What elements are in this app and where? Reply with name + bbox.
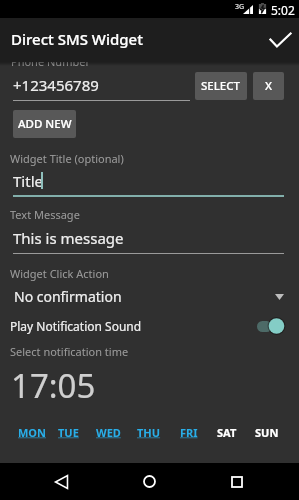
staticText: X	[265, 78, 273, 94]
staticText: Phone Number	[11, 54, 90, 69]
staticText: ADD NEW	[18, 116, 72, 132]
button[interactable]: No confirmation	[0, 286, 299, 310]
staticText: WED	[96, 425, 121, 440]
staticText: Direct SMS Widget	[11, 29, 143, 49]
staticText: Widget Click Action	[10, 266, 109, 281]
staticText: THU	[137, 425, 161, 440]
staticText: Play Notification Sound	[10, 318, 142, 334]
staticText: +123456789	[13, 75, 99, 95]
button[interactable]: X	[253, 72, 284, 100]
button[interactable]: FRI	[180, 422, 198, 442]
staticText: Title	[13, 171, 43, 191]
button[interactable]: SELECT	[195, 72, 247, 100]
button[interactable]: Save	[263, 25, 297, 55]
staticText: No confirmation	[14, 287, 122, 306]
staticText: This is message	[13, 228, 124, 248]
staticText: MON	[18, 425, 47, 440]
staticText: Select notification time	[10, 344, 129, 359]
staticText: 5:02	[271, 2, 295, 18]
button[interactable]: Back	[44, 465, 79, 498]
button[interactable]: Play Notification Sound	[0, 312, 299, 340]
staticText: SELECT	[201, 78, 241, 94]
button[interactable]: WED	[96, 422, 121, 442]
staticText: SUN	[255, 425, 279, 440]
staticText: 17:05	[11, 363, 96, 408]
button[interactable]: Recent apps	[219, 465, 254, 498]
staticText: SAT	[217, 425, 237, 440]
staticText: Widget Title (optional)	[10, 151, 124, 166]
button[interactable]: MON	[18, 422, 47, 442]
button[interactable]: Play notification sound toggle	[256, 317, 286, 335]
button[interactable]: SUN	[255, 422, 279, 442]
staticText: 3G	[235, 2, 245, 12]
staticText: FRI	[180, 425, 198, 440]
staticText: TUE	[58, 425, 79, 440]
button[interactable]: ADD NEW	[13, 110, 76, 138]
staticText: Text Message	[10, 207, 80, 222]
button[interactable]: SAT	[217, 422, 237, 442]
button[interactable]: TUE	[58, 422, 79, 442]
button[interactable]: Home	[132, 465, 167, 498]
button[interactable]: THU	[137, 422, 161, 442]
